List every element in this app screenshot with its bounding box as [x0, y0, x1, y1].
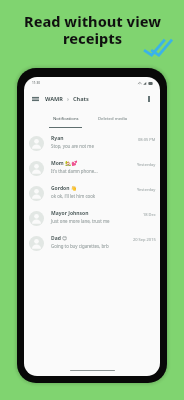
- staticText: Mayor Johnson: [51, 210, 89, 217]
- staticText: Deleted media: [98, 116, 128, 122]
- staticText: Chats: [73, 95, 89, 103]
- staticText: ok ok, i'll let him cook: [51, 193, 96, 199]
- staticText: 18 Dec: [143, 212, 156, 217]
- staticText: It's that damn phone...: [51, 168, 98, 174]
- staticText: Gordon 👋: [51, 185, 77, 192]
- staticText: Yesterday: [137, 187, 156, 192]
- staticText: Read without view receipts: [24, 11, 161, 48]
- button[interactable]: Dad 😊: [24, 231, 160, 256]
- staticText: ›: [67, 95, 70, 102]
- button[interactable]: Gordon 👋: [24, 181, 160, 206]
- button[interactable]: Open navigation menu: [28, 92, 42, 106]
- staticText: 20 Sep 2015: [133, 237, 156, 242]
- staticText: Stop, you are not me: [51, 143, 94, 149]
- button[interactable]: Mom 🏡💕: [24, 156, 160, 181]
- staticText: 08:05 PM: [138, 137, 156, 142]
- staticText: Mom 🏡💕: [51, 160, 78, 167]
- button[interactable]: Ryan: [24, 131, 160, 156]
- staticText: Yesterday: [137, 162, 156, 167]
- button[interactable]: Mayor Johnson: [24, 206, 160, 231]
- staticText: WAMR: [45, 95, 64, 103]
- staticText: Just one more lane, trust me: [51, 218, 110, 224]
- staticText: Notifications: [53, 116, 79, 122]
- button[interactable]: More options: [142, 92, 156, 106]
- staticText: Ryan: [51, 135, 64, 142]
- staticText: Going to buy cigarettes, brb: [51, 243, 109, 249]
- button[interactable]: Deleted media: [96, 112, 129, 125]
- staticText: Dad 😊: [51, 235, 68, 242]
- button[interactable]: Notifications: [49, 112, 82, 125]
- staticText: 11:30: [32, 81, 40, 85]
